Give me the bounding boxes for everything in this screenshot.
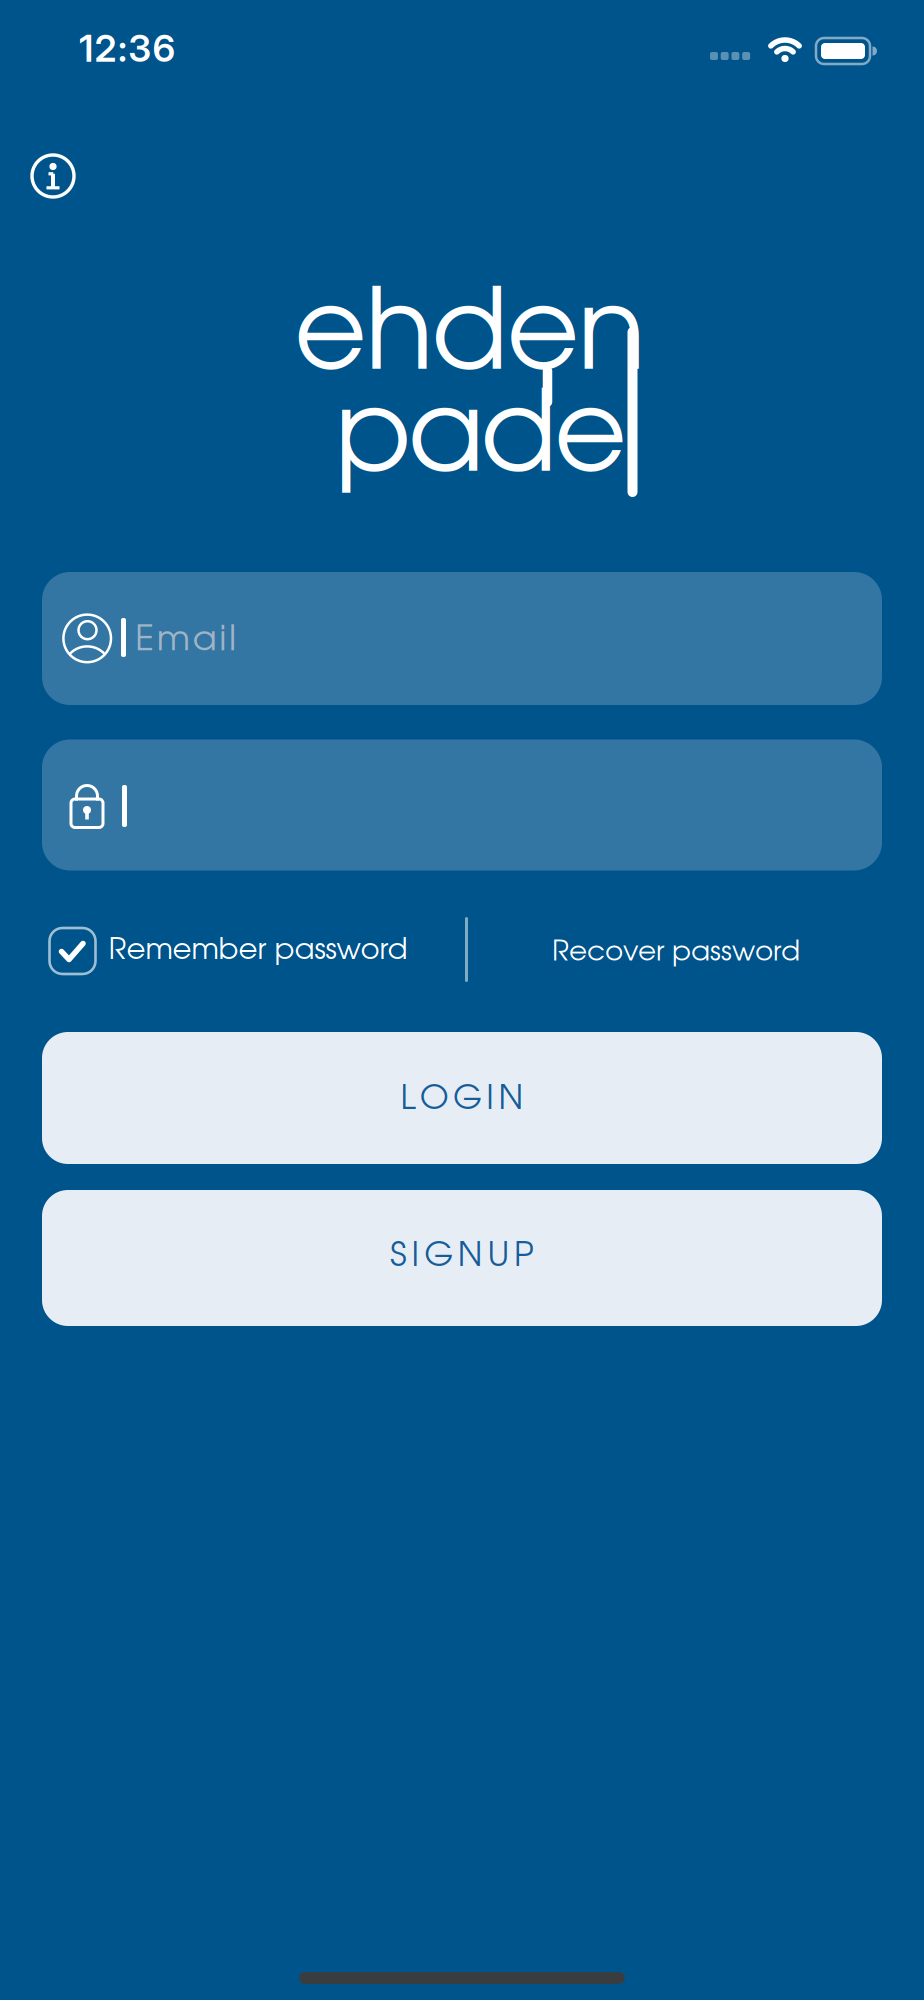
staticText: E: [135, 624, 154, 657]
staticText: I: [412, 1241, 420, 1272]
staticText: a: [192, 624, 216, 657]
button[interactable]: Recover password: [552, 940, 800, 966]
staticText: Remember password: [108, 937, 407, 965]
staticText: Recover password: [552, 940, 800, 966]
staticText: ehden: [294, 286, 645, 390]
staticText: G: [453, 1084, 482, 1115]
staticText: N: [458, 1241, 483, 1272]
staticText: i: [219, 624, 226, 657]
staticText: I: [486, 1084, 494, 1115]
button[interactable]: S: [42, 1190, 882, 1326]
staticText: G: [424, 1241, 453, 1272]
button[interactable]: Info: [29, 152, 77, 200]
staticText: 3: [128, 26, 151, 71]
staticText: :: [118, 26, 127, 71]
staticText: 2: [94, 26, 116, 71]
staticText: N: [498, 1084, 523, 1115]
staticText: S: [390, 1241, 407, 1272]
button[interactable]: Email: [42, 572, 882, 705]
staticText: m: [157, 624, 190, 657]
staticText: O: [420, 1084, 449, 1115]
staticText: L: [401, 1084, 416, 1115]
staticText: U: [487, 1241, 509, 1272]
staticText: P: [514, 1241, 534, 1272]
staticText: l: [229, 624, 236, 657]
staticText: 6: [153, 26, 176, 71]
staticText: pade: [335, 388, 627, 492]
button[interactable]: L: [42, 1032, 882, 1164]
staticText: 1: [79, 26, 93, 71]
button[interactable]: Password: [42, 739, 882, 870]
button[interactable]: Remember password: [49, 928, 407, 974]
